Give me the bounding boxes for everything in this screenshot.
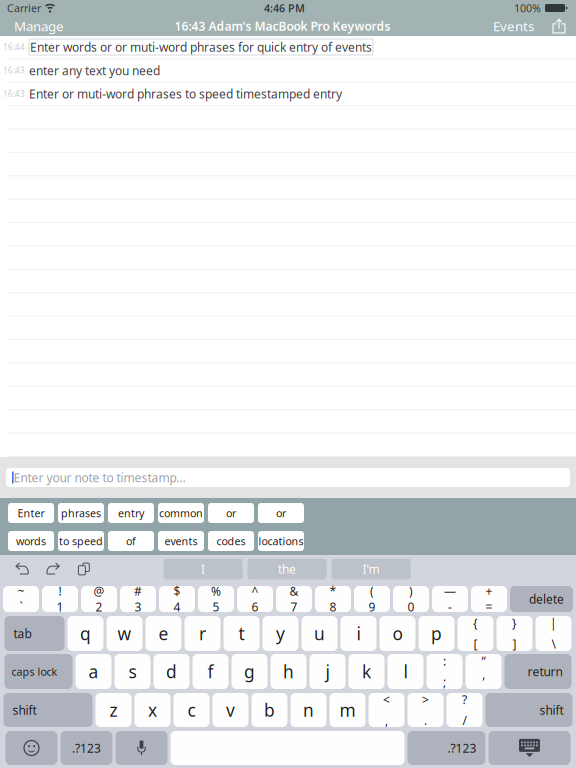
button[interactable]: + [471, 586, 507, 612]
staticText: * [329, 583, 336, 599]
button[interactable]: % [198, 586, 234, 612]
button[interactable]: the [248, 558, 327, 579]
button[interactable]: s [114, 654, 150, 689]
button[interactable]: entry [108, 503, 154, 523]
button[interactable]: Paste [78, 563, 90, 575]
button[interactable]: ? [446, 693, 482, 727]
button[interactable]: y [262, 616, 298, 651]
button[interactable]: c [173, 693, 209, 727]
button[interactable]: Hide Keyboard [488, 731, 570, 765]
staticText: c [187, 698, 195, 721]
button[interactable]: v [212, 693, 248, 727]
button[interactable]: Manage [0, 16, 78, 36]
button[interactable]: phrases [58, 503, 104, 523]
button[interactable]: or [258, 503, 304, 523]
button[interactable]: Undo [16, 563, 29, 575]
button[interactable]: to speed [58, 531, 104, 551]
button[interactable]: events [158, 531, 204, 551]
staticText: 100% [514, 1, 541, 15]
button[interactable]: h [270, 654, 306, 689]
button[interactable]: & [276, 586, 312, 612]
staticText: 16:44 [3, 42, 25, 52]
button[interactable]: I [164, 558, 243, 579]
button[interactable]: common [158, 503, 204, 523]
staticText: ] [512, 636, 516, 652]
staticText: w [117, 622, 131, 645]
button[interactable]: return [504, 654, 571, 689]
button[interactable]: > [407, 693, 443, 727]
button[interactable]: u [301, 616, 337, 651]
button[interactable]: shift [3, 693, 92, 727]
button[interactable]: i [340, 616, 376, 651]
staticText: delete [529, 591, 564, 607]
button[interactable]: d [153, 654, 189, 689]
button[interactable]: n [290, 693, 326, 727]
button[interactable]: ^ [237, 586, 273, 612]
button[interactable]: Events [487, 16, 540, 36]
button[interactable]: { [457, 616, 493, 651]
button[interactable]: k [348, 654, 384, 689]
button[interactable]: ) [393, 586, 429, 612]
button[interactable]: m [329, 693, 365, 727]
button[interactable]: e [145, 616, 181, 651]
button[interactable]: t [223, 616, 259, 651]
staticText: 1 [56, 599, 63, 615]
button[interactable]: or [208, 503, 254, 523]
staticText: I'm [363, 561, 380, 577]
button[interactable]: shift [485, 693, 572, 727]
staticText: g [244, 660, 255, 683]
button[interactable]: ” [465, 654, 501, 689]
button[interactable]: a [75, 654, 111, 689]
staticText: — [444, 583, 456, 599]
button[interactable]: locations [258, 531, 304, 551]
button[interactable]: ! [42, 586, 78, 612]
staticText: } [512, 615, 517, 631]
button[interactable]: } [496, 616, 532, 651]
button[interactable]: of [108, 531, 154, 551]
button[interactable]: b [251, 693, 287, 727]
button[interactable]: < [368, 693, 404, 727]
button[interactable]: l [387, 654, 423, 689]
staticText: d [166, 660, 177, 683]
button[interactable]: $ [159, 586, 195, 612]
button[interactable]: p [418, 616, 454, 651]
button[interactable]: Emoji [5, 731, 57, 765]
button[interactable]: @ [81, 586, 117, 612]
button[interactable]: w [106, 616, 142, 651]
staticText: Enter [17, 506, 44, 520]
button[interactable]: f [192, 654, 228, 689]
button[interactable]: Dictate [115, 731, 167, 765]
button[interactable]: * [315, 586, 351, 612]
button[interactable]: words [8, 531, 54, 551]
button[interactable]: tab [4, 616, 64, 651]
button[interactable]: o [379, 616, 415, 651]
button[interactable]: codes [208, 531, 254, 551]
button[interactable]: .?123 [60, 731, 112, 765]
button[interactable]: Enter [8, 503, 54, 523]
button[interactable]: ( [354, 586, 390, 612]
button[interactable]: caps lock [4, 654, 72, 689]
button[interactable]: z [95, 693, 131, 727]
staticText: 4:46 PM [264, 1, 305, 15]
button[interactable]: Share [548, 16, 570, 36]
button[interactable]: | [535, 616, 571, 651]
button[interactable]: — [432, 586, 468, 612]
button[interactable]: .?123 [407, 731, 485, 765]
button[interactable]: x [134, 693, 170, 727]
button[interactable]: q [67, 616, 103, 651]
button[interactable]: g [231, 654, 267, 689]
button[interactable]: Redo [47, 563, 59, 575]
button[interactable]: I'm [332, 558, 411, 579]
staticText: the [278, 561, 296, 577]
button[interactable]: r [184, 616, 220, 651]
button[interactable]: delete [510, 586, 573, 612]
staticText: x [148, 698, 157, 721]
button[interactable]: j [309, 654, 345, 689]
button[interactable]: : [426, 654, 462, 689]
staticText: < [383, 692, 390, 707]
staticText: s [128, 660, 136, 683]
staticText: i [356, 622, 360, 645]
button[interactable]: ~ [3, 586, 39, 612]
button[interactable]: # [120, 586, 156, 612]
